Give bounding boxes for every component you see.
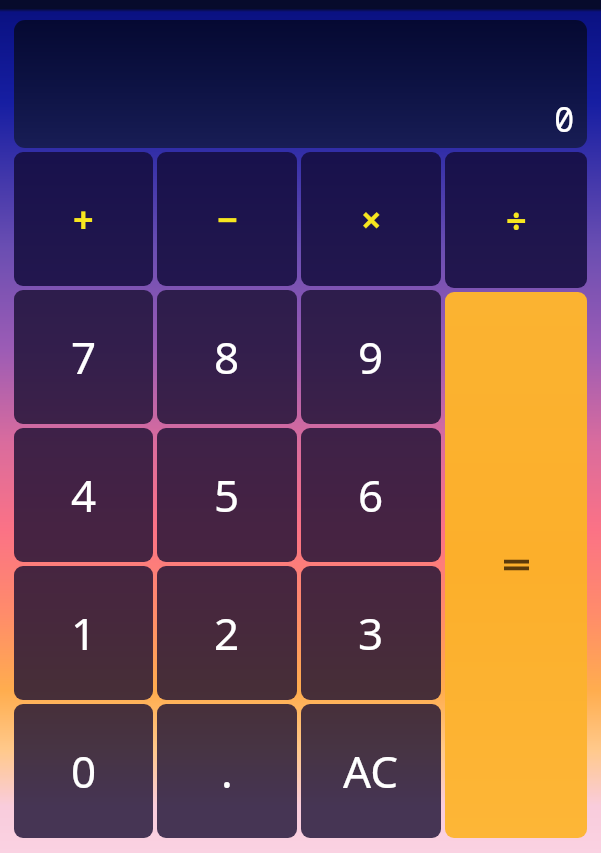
button[interactable]: 2 (157, 566, 297, 700)
staticText: 0 (71, 741, 97, 801)
button[interactable]: − (157, 152, 297, 286)
button[interactable]: 0 (14, 704, 153, 838)
staticText: + (73, 195, 94, 244)
button[interactable]: Equals (445, 292, 587, 838)
button[interactable]: 3 (301, 566, 441, 700)
button[interactable]: 5 (157, 428, 297, 562)
staticText: 6 (358, 465, 384, 525)
staticText: 4 (71, 465, 97, 525)
staticText: − (217, 195, 238, 244)
staticText: 1 (71, 603, 97, 663)
button[interactable]: 9 (301, 290, 441, 424)
button[interactable]: ÷ (445, 152, 587, 288)
staticText: 9 (358, 327, 384, 387)
staticText: 0 (554, 96, 575, 142)
staticText: 2 (214, 603, 240, 663)
staticText: 7 (71, 327, 97, 387)
staticText: AC (343, 741, 399, 801)
button[interactable]: 8 (157, 290, 297, 424)
button[interactable]: AC (301, 704, 441, 838)
staticText: 8 (214, 327, 240, 387)
staticText: 5 (214, 465, 240, 525)
button[interactable]: . (157, 704, 297, 838)
button[interactable]: 6 (301, 428, 441, 562)
button[interactable]: × (301, 152, 441, 286)
button[interactable]: + (14, 152, 153, 286)
staticText: × (361, 195, 382, 244)
staticText: ÷ (506, 196, 527, 245)
button[interactable]: 7 (14, 290, 153, 424)
button[interactable]: 4 (14, 428, 153, 562)
button[interactable]: 1 (14, 566, 153, 700)
staticText: . (221, 741, 233, 801)
staticText: 3 (358, 603, 384, 663)
